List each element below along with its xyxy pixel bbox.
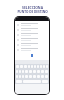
button[interactable] <box>41 75 44 78</box>
button[interactable] <box>16 75 18 78</box>
button[interactable] <box>16 65 19 68</box>
button[interactable] <box>45 70 48 73</box>
button[interactable] <box>28 65 30 68</box>
button[interactable] <box>37 65 39 68</box>
button[interactable] <box>22 70 24 73</box>
button[interactable] <box>31 65 33 68</box>
button[interactable] <box>15 27 49 32</box>
button[interactable] <box>15 42 49 47</box>
button[interactable] <box>15 37 49 42</box>
button[interactable] <box>40 65 42 68</box>
button[interactable] <box>42 80 48 83</box>
staticText: PUNTO DE DESTINO <box>17 10 48 14</box>
button[interactable] <box>43 65 45 68</box>
button[interactable] <box>15 32 49 37</box>
button[interactable] <box>45 75 48 78</box>
button[interactable] <box>37 75 40 78</box>
button[interactable] <box>16 80 22 83</box>
button[interactable] <box>22 75 24 78</box>
button[interactable] <box>25 70 28 73</box>
button[interactable] <box>19 70 21 73</box>
button[interactable] <box>33 70 36 73</box>
button[interactable] <box>25 75 28 78</box>
button[interactable] <box>34 65 36 68</box>
button[interactable] <box>24 65 27 68</box>
button[interactable] <box>15 22 49 27</box>
staticText: SELECCIONA <box>22 5 43 10</box>
button[interactable] <box>33 75 36 78</box>
button[interactable] <box>46 65 48 68</box>
button[interactable] <box>37 70 40 73</box>
button[interactable] <box>15 47 49 52</box>
button[interactable] <box>20 65 23 68</box>
button[interactable] <box>29 75 32 78</box>
button[interactable] <box>19 75 21 78</box>
button[interactable] <box>41 70 44 73</box>
button[interactable] <box>16 70 18 73</box>
button[interactable] <box>29 70 32 73</box>
